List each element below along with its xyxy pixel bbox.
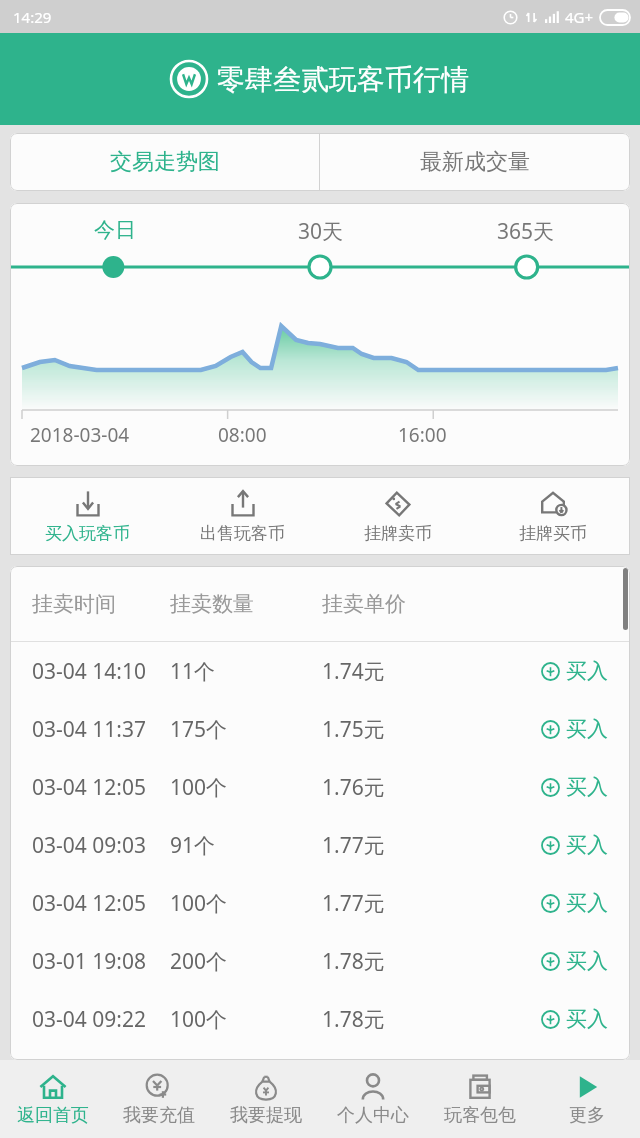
staticText: 1.75元 bbox=[322, 715, 541, 744]
staticText: 2018-03-04 bbox=[30, 422, 130, 448]
button[interactable]: 挂牌买币 bbox=[475, 477, 630, 555]
staticText: 08:00 bbox=[218, 422, 267, 448]
staticText: 今日 bbox=[94, 217, 136, 243]
staticText: 挂牌卖币 bbox=[364, 523, 432, 544]
staticText: 交易走势图 bbox=[110, 148, 220, 176]
staticText: 03-01 19:08 bbox=[32, 947, 170, 976]
staticText: 91个 bbox=[170, 831, 322, 860]
staticText: 16:00 bbox=[398, 422, 447, 448]
button[interactable]: 我要提现 bbox=[212, 1060, 319, 1138]
staticText: 03-04 11:37 bbox=[32, 715, 170, 744]
staticText: 买入 bbox=[566, 774, 608, 800]
staticText: 挂卖数量 bbox=[170, 591, 322, 617]
staticText: 200个 bbox=[170, 947, 322, 976]
button[interactable]: 挂牌卖币 bbox=[320, 477, 475, 555]
staticText: 更多 bbox=[569, 1104, 605, 1127]
button[interactable]: 玩客包包 bbox=[426, 1060, 533, 1138]
staticText: 03-04 14:10 bbox=[32, 657, 170, 686]
staticText: 14:29 bbox=[13, 7, 52, 27]
staticText: 个人中心 bbox=[337, 1104, 409, 1127]
staticText: 买入 bbox=[566, 658, 608, 684]
staticText: 买入 bbox=[566, 1006, 608, 1032]
button[interactable]: 最新成交量 bbox=[320, 133, 630, 191]
button[interactable]: 个人中心 bbox=[319, 1060, 426, 1138]
staticText: 买入 bbox=[566, 890, 608, 916]
staticText: 挂牌买币 bbox=[519, 523, 587, 544]
button[interactable]: 买入玩客币 bbox=[10, 477, 165, 555]
staticText: 03-04 09:22 bbox=[32, 1005, 170, 1034]
button[interactable]: 03-04 14:10 bbox=[32, 642, 630, 700]
staticText: 买入 bbox=[566, 948, 608, 974]
staticText: 365天 bbox=[497, 217, 555, 246]
staticText: 03-04 12:05 bbox=[32, 773, 170, 802]
staticText: 100个 bbox=[170, 1005, 322, 1034]
staticText: 最新成交量 bbox=[420, 148, 530, 176]
staticText: 03-04 09:03 bbox=[32, 831, 170, 860]
staticText: 挂卖时间 bbox=[32, 591, 170, 617]
button[interactable]: 03-04 12:05 bbox=[32, 874, 630, 932]
staticText: 11个 bbox=[170, 657, 322, 686]
staticText: 玩客包包 bbox=[444, 1104, 516, 1127]
staticText: 我要充值 bbox=[123, 1104, 195, 1127]
staticText: 买入 bbox=[566, 832, 608, 858]
button[interactable]: 出售玩客币 bbox=[165, 477, 320, 555]
button[interactable]: 03-04 09:22 bbox=[32, 990, 630, 1048]
button[interactable]: 03-04 12:05 bbox=[32, 758, 630, 816]
staticText: 1.77元 bbox=[322, 831, 541, 860]
staticText: 175个 bbox=[170, 715, 322, 744]
staticText: 买入 bbox=[566, 716, 608, 742]
staticText: 100个 bbox=[170, 889, 322, 918]
staticText: 1.78元 bbox=[322, 947, 541, 976]
staticText: 4G+ bbox=[565, 7, 594, 27]
staticText: 零肆叁贰玩客币行情 bbox=[217, 62, 469, 97]
staticText: 1.74元 bbox=[322, 657, 541, 686]
staticText: 买入玩客币 bbox=[45, 523, 130, 544]
button[interactable]: 03-01 19:08 bbox=[32, 932, 630, 990]
button[interactable]: 返回首页 bbox=[0, 1060, 106, 1138]
button[interactable]: 03-04 11:37 bbox=[32, 700, 630, 758]
staticText: 1.77元 bbox=[322, 889, 541, 918]
staticText: 100个 bbox=[170, 773, 322, 802]
staticText: 1.78元 bbox=[322, 1005, 541, 1034]
staticText: 返回首页 bbox=[17, 1104, 89, 1127]
button[interactable]: 03-04 09:03 bbox=[32, 816, 630, 874]
staticText: 出售玩客币 bbox=[200, 523, 285, 544]
button[interactable]: 我要充值 bbox=[106, 1060, 212, 1138]
staticText: 1.76元 bbox=[322, 773, 541, 802]
staticText: 我要提现 bbox=[230, 1104, 302, 1127]
button[interactable]: 更多 bbox=[533, 1060, 640, 1138]
staticText: 30天 bbox=[298, 217, 344, 246]
staticText: 03-04 12:05 bbox=[32, 889, 170, 918]
button[interactable]: 交易走势图 bbox=[10, 133, 319, 191]
staticText: 挂卖单价 bbox=[322, 591, 406, 617]
